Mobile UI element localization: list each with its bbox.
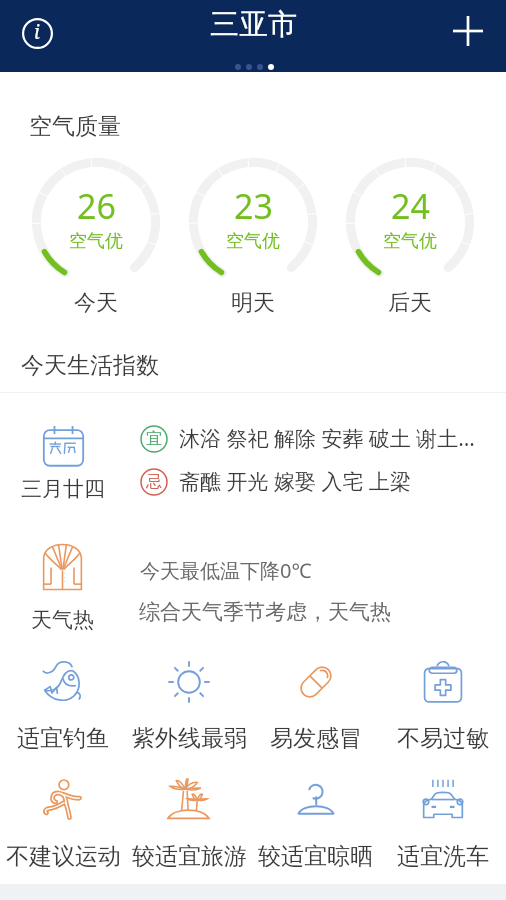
button[interactable]: Add city	[445, 8, 491, 54]
button[interactable]: 较适宜晾晒	[252, 777, 379, 871]
button[interactable]: 易发感冒	[252, 659, 379, 753]
staticText: 天气热	[31, 607, 94, 633]
button[interactable]: 适宜钓鱼	[0, 659, 126, 753]
staticText: 斋醮 开光 嫁娶 入宅 上梁	[179, 467, 411, 496]
staticText: 24	[391, 183, 430, 229]
staticText: 三月廿四	[21, 476, 105, 502]
staticText: 空气优	[69, 230, 123, 253]
staticText: 易发感冒	[270, 724, 362, 753]
staticText: 适宜洗车	[397, 842, 489, 871]
staticText: 今天生活指数	[21, 351, 159, 380]
staticText: 今天	[74, 289, 118, 317]
staticText: 较适宜晾晒	[258, 842, 373, 871]
staticText: 较适宜旅游	[132, 842, 247, 871]
button[interactable]: 较适宜旅游	[126, 777, 252, 871]
staticText: 综合天气季节考虑，天气热	[139, 599, 391, 625]
button[interactable]: 不建议运动	[0, 777, 126, 871]
button[interactable]: 适宜洗车	[379, 777, 506, 871]
staticText: 26	[77, 183, 116, 229]
staticText: 不易过敏	[397, 724, 489, 753]
staticText: 23	[234, 183, 273, 229]
staticText: 沐浴 祭祀 解除 安葬 破土 谢土…	[179, 424, 475, 453]
staticText: 忌	[146, 472, 162, 492]
button[interactable]: Info	[13, 9, 61, 57]
staticText: 适宜钓鱼	[17, 724, 109, 753]
staticText: i	[34, 19, 40, 45]
staticText: 明天	[231, 289, 275, 317]
staticText: 三亚市	[210, 6, 297, 43]
button[interactable]: 紫外线最弱	[126, 659, 252, 753]
staticText: 空气优	[226, 230, 280, 253]
button[interactable]: 不易过敏	[379, 659, 506, 753]
staticText: 空气优	[383, 230, 437, 253]
staticText: 今天最低温下降0℃	[140, 557, 312, 584]
staticText: 后天	[388, 289, 432, 317]
staticText: 不建议运动	[6, 842, 121, 871]
staticText: 紫外线最弱	[132, 724, 247, 753]
staticText: 空气质量	[29, 112, 121, 141]
staticText: 宜	[146, 429, 162, 449]
